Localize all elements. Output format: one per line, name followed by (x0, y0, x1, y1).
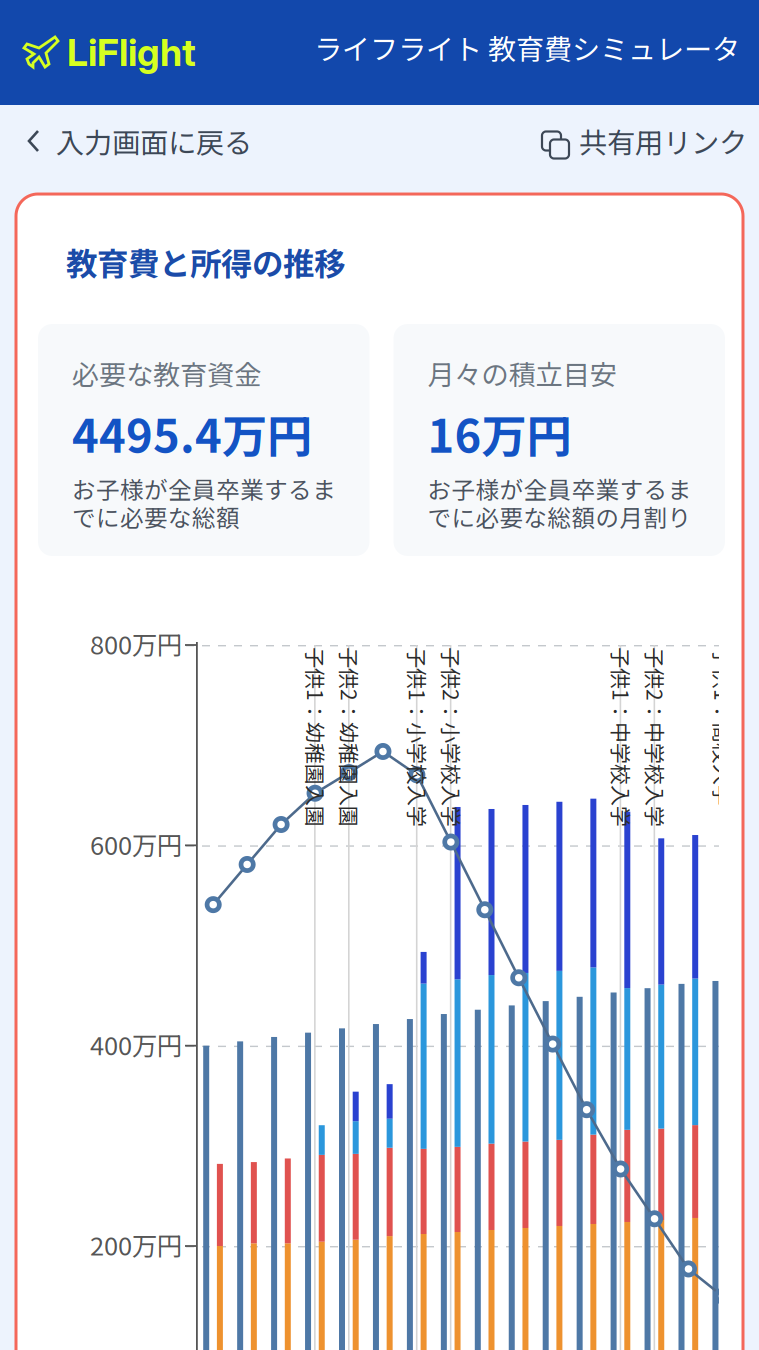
button[interactable]: 共有用リンク (538, 108, 747, 173)
staticText: でに必要な総額の月割り (427, 499, 691, 534)
staticText: 必要な教育資金 (72, 353, 261, 393)
staticText: 子供1：幼稚園入園 (327, 643, 507, 673)
staticText: 月々の積立目安 (427, 353, 616, 393)
staticText: 教育費と所得の推移 (66, 239, 345, 285)
staticText: ライフライト 教育費シミュレータ (314, 27, 740, 68)
staticText: 入力画面に戻る (56, 120, 252, 161)
staticText: 子供1：高校入学 (734, 643, 759, 673)
button[interactable]: 入力画面に戻る (26, 108, 252, 173)
staticText: 子供1：小学校入学 (429, 643, 609, 673)
staticText: 16万円 (427, 400, 571, 466)
staticText: LiFlight (67, 30, 196, 75)
staticText: 200万円 (90, 1226, 182, 1263)
staticText: 4495.4万円 (72, 400, 312, 466)
staticText: 共有用リンク (579, 120, 747, 161)
staticText: 子供2：小学校入学 (463, 643, 643, 673)
staticText: 400万円 (90, 1026, 182, 1063)
staticText: お子様が全員卒業するま (72, 471, 336, 506)
staticText: 子供1：中学校入学 (633, 643, 759, 673)
staticText: 子供2：幼稚園入園 (361, 643, 541, 673)
staticText: でに必要な総額 (72, 499, 240, 534)
staticText: 600万円 (90, 825, 182, 862)
staticText: 子供2：中学校入学 (666, 643, 759, 673)
staticText: お子様が全員卒業するま (427, 471, 691, 506)
staticText: 800万円 (90, 625, 182, 662)
